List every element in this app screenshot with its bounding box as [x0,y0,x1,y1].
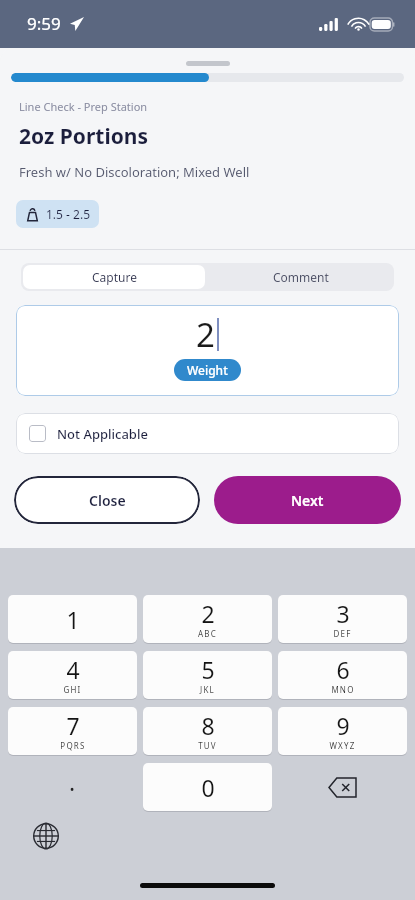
button[interactable]: Close [14,476,200,524]
staticText: Capture [92,269,137,285]
staticText: 9:59 [27,12,61,35]
button[interactable]: 3 [278,595,407,643]
staticText: JKL [200,684,215,695]
button[interactable]: 1.5 - 2.5 [16,200,99,228]
staticText: 8 [201,710,215,741]
button[interactable]: 7 [8,707,137,755]
button[interactable]: 2 [16,305,399,396]
staticText: 6 [336,654,350,685]
button[interactable]: Weight [174,359,241,381]
staticText: 0 [201,772,215,803]
staticText: 1.5 - 2.5 [46,206,90,222]
button[interactable]: 8 [143,707,272,755]
button[interactable]: 0 [143,763,272,811]
staticText: 4 [66,654,80,685]
staticText: Not Applicable [57,425,148,443]
button[interactable]: 1 [8,595,137,643]
button[interactable]: 9 [278,707,407,755]
staticText: 2oz Portions [19,122,149,151]
staticText: 2 [201,598,215,629]
button[interactable]: 6 [278,651,407,699]
staticText: 2 [196,312,215,357]
staticText: Close [89,491,126,510]
staticText: DEF [333,628,352,639]
staticText: 3 [336,598,350,629]
button[interactable]: 4 [8,651,137,699]
staticText: 5 [201,654,215,685]
button[interactable]: . [8,763,137,811]
button[interactable]: 5 [143,651,272,699]
staticText: ABC [198,628,217,639]
staticText: . [69,766,76,797]
button[interactable]: Not Applicable [16,413,399,454]
staticText: Line Check - Prep Station [19,99,148,114]
button[interactable]: Backspace [278,763,407,811]
staticText: 9 [336,710,350,741]
staticText: GHI [63,684,82,695]
button[interactable]: 2 [143,595,272,643]
staticText: 7 [66,710,80,741]
staticText: WXYZ [329,740,356,751]
button[interactable]: Comment [207,263,394,291]
staticText: 1 [66,604,80,635]
staticText: Fresh w/ No Discoloration; Mixed Well [19,163,250,181]
staticText: Weight [187,362,228,378]
staticText: Next [291,491,324,510]
staticText: Comment [273,269,329,285]
staticText: PQRS [60,740,86,751]
button[interactable]: Capture [23,265,205,289]
button[interactable]: Change keyboard [30,820,62,852]
button[interactable]: Next [214,476,401,524]
staticText: TUV [198,740,217,751]
staticText: MNO [331,684,355,695]
